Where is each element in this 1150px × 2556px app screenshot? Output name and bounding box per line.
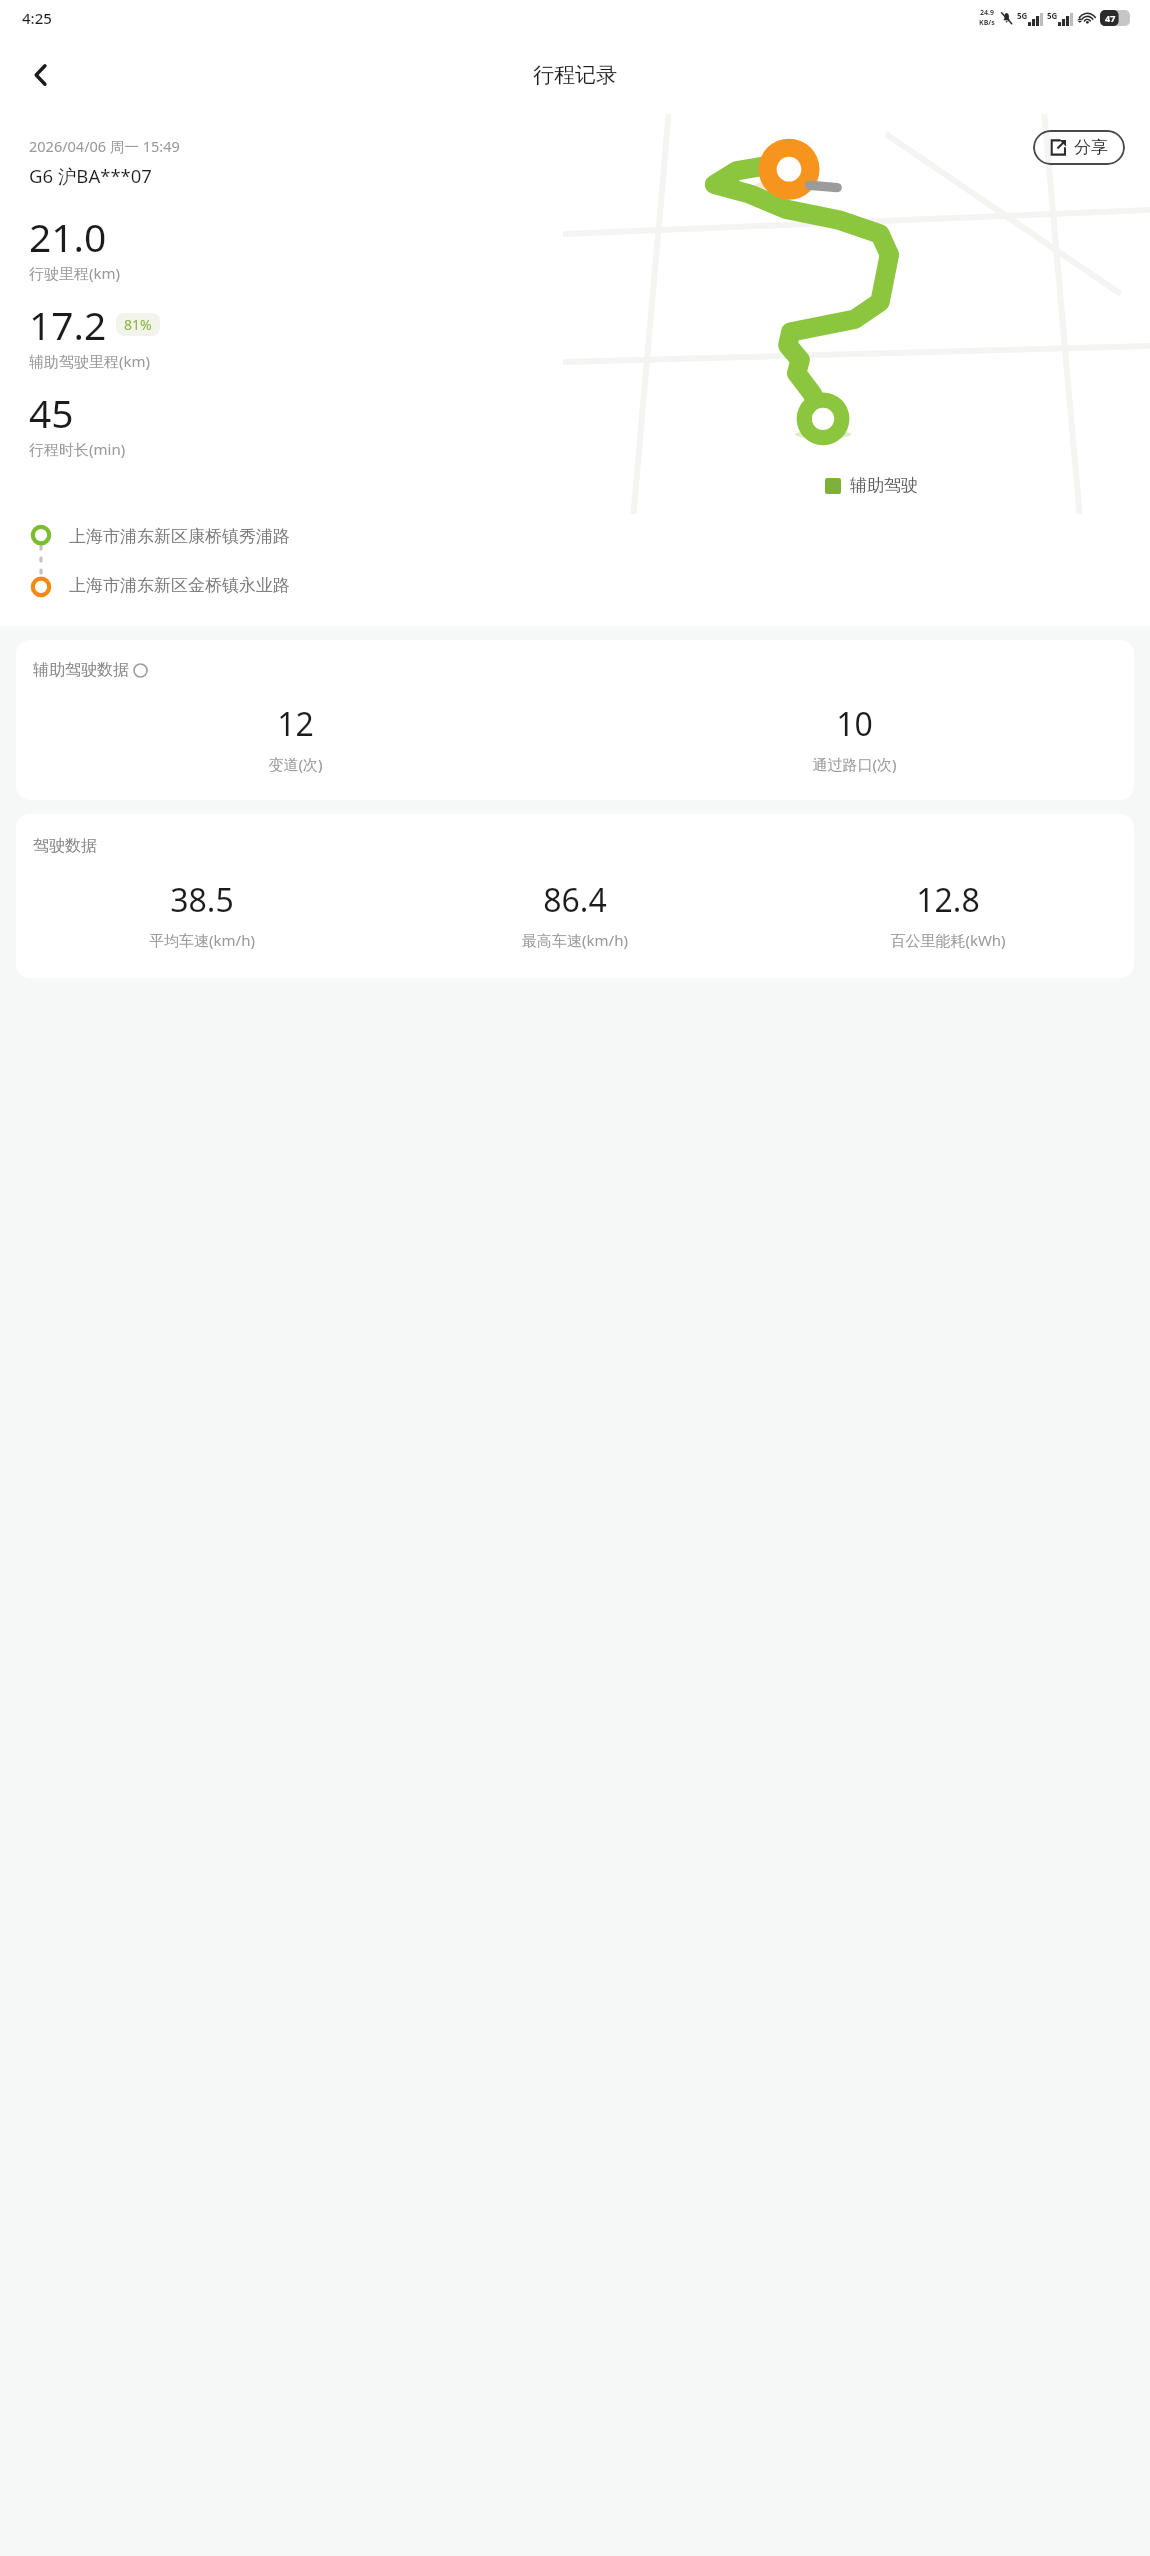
staticText: 12.8: [916, 878, 980, 922]
staticText: 驾驶数据: [33, 836, 97, 856]
button[interactable]: 辅助驾驶数据: [16, 640, 1134, 800]
staticText: 百公里能耗(kWh): [890, 930, 1006, 950]
staticText: 4:25: [22, 8, 52, 28]
staticText: 47: [1105, 12, 1116, 24]
staticText: 81%: [124, 315, 152, 334]
staticText: 辅助驾驶数据: [33, 660, 129, 680]
staticText: 5G: [1047, 10, 1058, 21]
staticText: 行程时长(min): [29, 439, 126, 459]
staticText: 45: [29, 386, 74, 439]
staticText: 辅助驾驶: [850, 475, 918, 496]
button[interactable]: Back: [14, 48, 68, 102]
button[interactable]: 分享: [1033, 130, 1125, 165]
staticText: 上海市浦东新区金桥镇永业路: [69, 575, 290, 596]
staticText: 17.2: [29, 298, 107, 351]
staticText: 行程记录: [533, 62, 617, 88]
staticText: 21.0: [29, 210, 107, 263]
staticText: 辅助驾驶里程(km): [29, 351, 151, 371]
staticText: 变道(次): [268, 754, 323, 774]
staticText: 12: [277, 702, 314, 746]
staticText: 平均车速(km/h): [149, 930, 255, 950]
staticText: 行驶里程(km): [29, 263, 121, 283]
staticText: 38.5: [170, 878, 234, 922]
staticText: G6 沪BA***07: [29, 163, 152, 188]
staticText: KB/s: [979, 18, 995, 28]
button[interactable]: 驾驶数据: [16, 814, 1134, 978]
staticText: 上海市浦东新区康桥镇秀浦路: [69, 526, 290, 547]
staticText: 10: [836, 702, 873, 746]
staticText: 最高车速(km/h): [522, 930, 628, 950]
staticText: 通过路口(次): [812, 754, 897, 774]
staticText: 分享: [1074, 137, 1108, 158]
staticText: 5G: [1017, 10, 1028, 21]
staticText: 24.9: [980, 8, 994, 18]
staticText: 86.4: [543, 878, 607, 922]
staticText: 2026/04/06 周一 15:49: [29, 136, 180, 156]
